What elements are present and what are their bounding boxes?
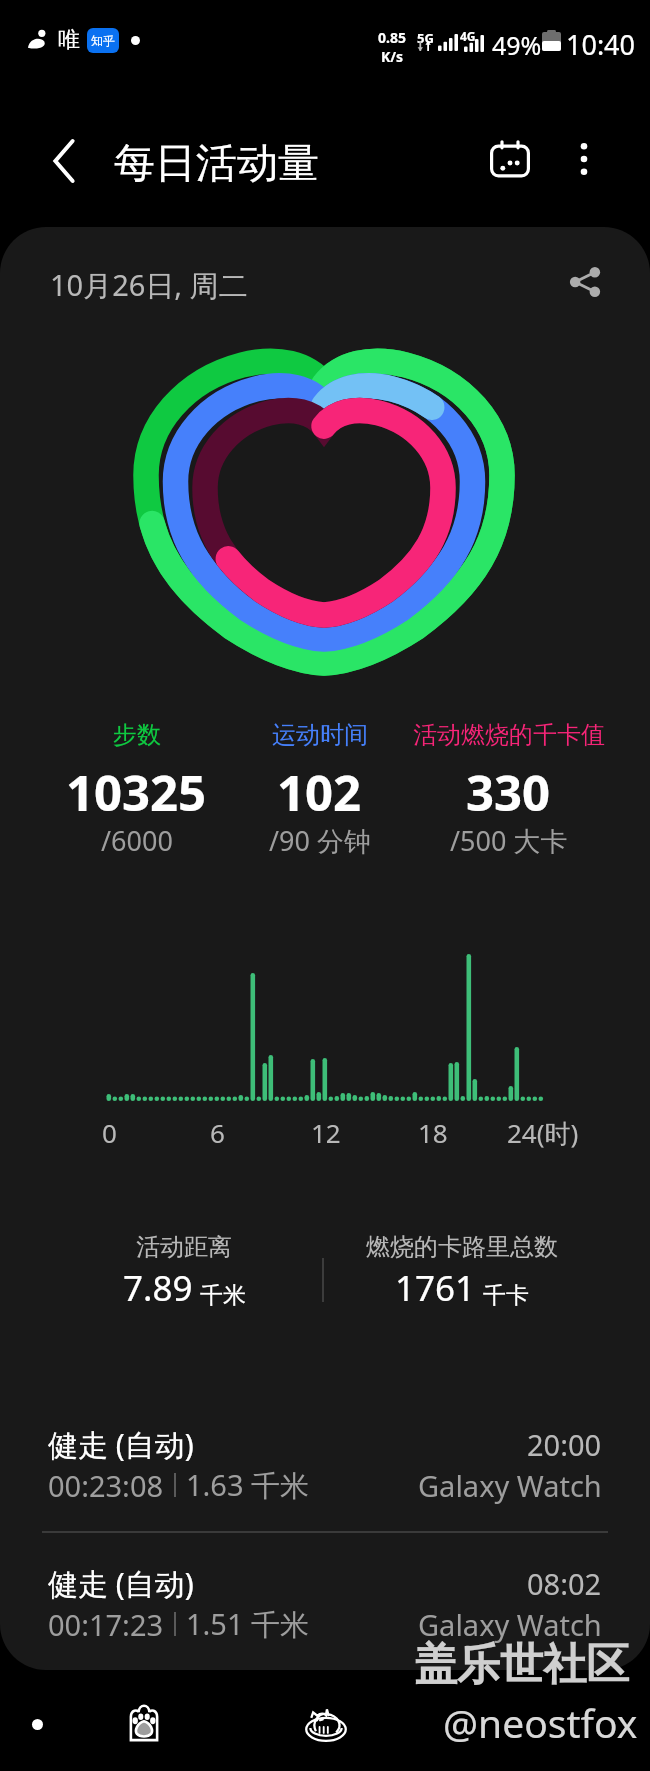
button[interactable]: Back bbox=[296, 1692, 356, 1752]
staticText: /90 分钟 bbox=[269, 822, 371, 859]
staticText: 知乎 bbox=[91, 33, 115, 48]
staticText: 每日活动量 bbox=[114, 138, 319, 190]
staticText: 330 bbox=[466, 759, 551, 826]
button[interactable]: 活动燃烧的千卡值 bbox=[393, 720, 624, 863]
staticText: 4G bbox=[460, 28, 476, 44]
staticText: 步数 bbox=[113, 720, 161, 750]
button[interactable]: 燃烧的卡路里总数 bbox=[325, 1232, 599, 1312]
button[interactable]: 健走 (自动) bbox=[0, 1414, 650, 1515]
button[interactable]: Home bbox=[114, 1692, 174, 1752]
button[interactable]: 活动距离 bbox=[47, 1232, 321, 1312]
staticText: 08:02 bbox=[527, 1564, 602, 1603]
staticText: 燃烧的卡路里总数 bbox=[366, 1232, 558, 1262]
staticText: /500 大卡 bbox=[450, 822, 568, 859]
staticText: 18 bbox=[418, 1115, 448, 1150]
button[interactable]: Share bbox=[556, 253, 614, 311]
staticText: 5G bbox=[417, 29, 434, 47]
staticText: 千米 bbox=[200, 1281, 246, 1310]
staticText: 1.51 千米 bbox=[186, 1604, 310, 1644]
staticText: 24(时) bbox=[507, 1115, 579, 1151]
staticText: 健走 (自动) bbox=[48, 1563, 194, 1604]
staticText: 活动距离 bbox=[136, 1232, 232, 1262]
button[interactable]: 运动时间 bbox=[204, 720, 435, 863]
staticText: 6 bbox=[210, 1115, 225, 1150]
staticText: 10:40 bbox=[566, 26, 636, 63]
staticText: K/s bbox=[381, 47, 404, 66]
button[interactable]: Calendar bbox=[480, 131, 540, 191]
button[interactable]: More options bbox=[556, 131, 612, 187]
button[interactable]: Recent apps bbox=[7, 1694, 67, 1754]
staticText: 1761 bbox=[395, 1264, 476, 1312]
staticText: 1.63 千米 bbox=[186, 1465, 310, 1505]
button[interactable]: 健走 (自动) bbox=[0, 1553, 650, 1654]
staticText: Galaxy Watch bbox=[418, 1605, 602, 1644]
staticText: 20:00 bbox=[527, 1425, 602, 1464]
staticText: 健走 (自动) bbox=[48, 1424, 194, 1465]
staticText: 0 bbox=[102, 1115, 117, 1150]
staticText: 0.85 bbox=[378, 28, 406, 47]
staticText: 活动燃烧的千卡值 bbox=[413, 720, 605, 750]
staticText: 00:23:08 bbox=[48, 1466, 164, 1505]
staticText: 49% bbox=[492, 28, 542, 62]
staticText: 12 bbox=[311, 1115, 341, 1150]
staticText: /6000 bbox=[101, 822, 173, 859]
staticText: 千卡 bbox=[483, 1281, 529, 1310]
staticText: 运动时间 bbox=[272, 720, 368, 750]
staticText: 102 bbox=[277, 759, 362, 826]
staticText: 10325 bbox=[66, 759, 207, 826]
staticText: 00:17:23 bbox=[48, 1605, 164, 1644]
staticText: Galaxy Watch bbox=[418, 1466, 602, 1505]
staticText: 7.89 bbox=[123, 1264, 193, 1312]
button[interactable]: 步数 bbox=[21, 720, 252, 863]
button[interactable]: Back bbox=[34, 131, 94, 191]
staticText: 唯 bbox=[58, 26, 80, 54]
staticText: @neostfox bbox=[443, 1696, 638, 1749]
staticText: 盖乐世社区 bbox=[414, 1638, 629, 1692]
staticText: 10月26日, 周二 bbox=[50, 265, 248, 305]
